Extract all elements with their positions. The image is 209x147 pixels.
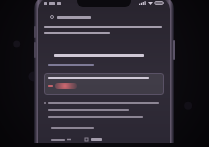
other: Option bbox=[85, 138, 88, 141]
other: Dropdown bbox=[67, 138, 71, 141]
other: Status bbox=[50, 15, 54, 19]
button[interactable] bbox=[44, 64, 164, 66]
button[interactable] bbox=[44, 73, 164, 95]
button[interactable]: Dropdown bbox=[51, 137, 71, 142]
button[interactable]: Status bbox=[44, 15, 164, 19]
button[interactable]: Option bbox=[85, 137, 102, 142]
